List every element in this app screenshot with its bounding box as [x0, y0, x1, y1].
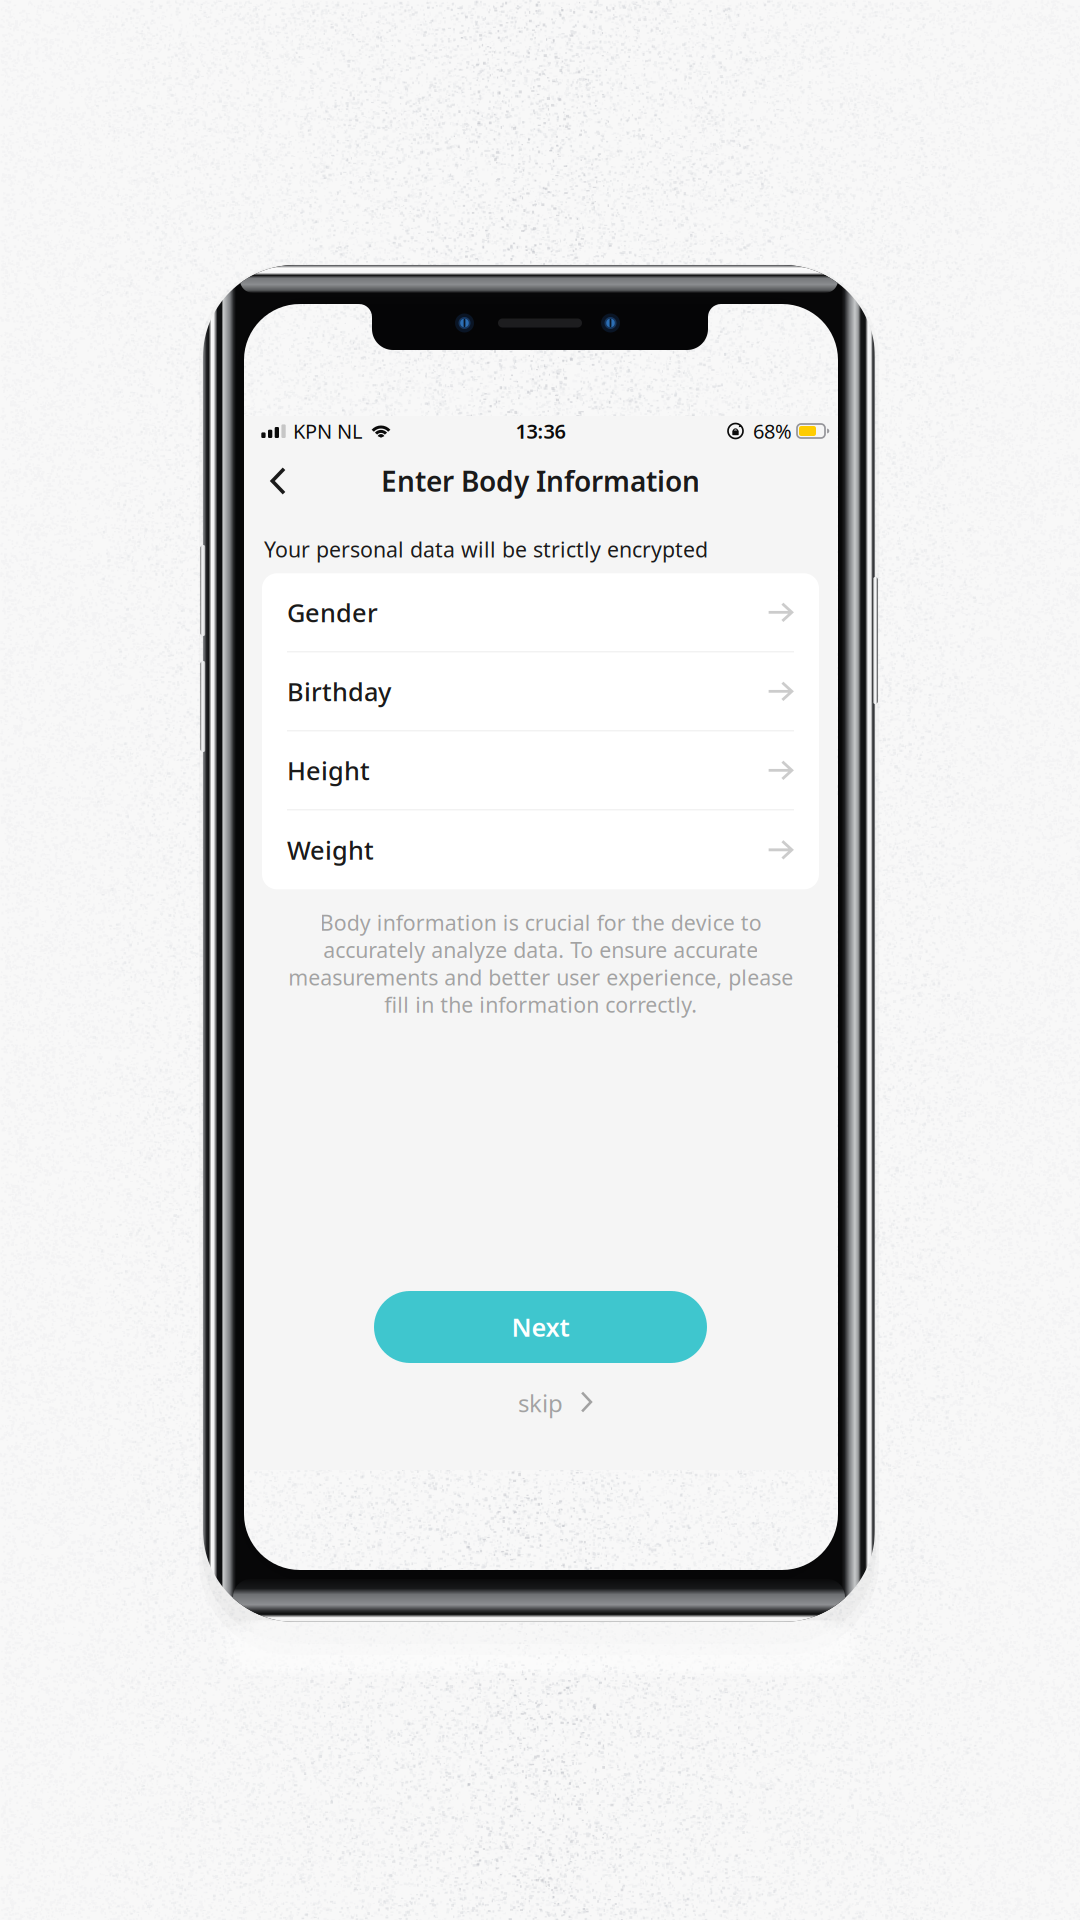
staticText: skip: [518, 1387, 563, 1419]
staticText: Next: [511, 1310, 569, 1344]
button[interactable]: Weight: [262, 810, 819, 889]
button[interactable]: skip: [460, 1382, 620, 1424]
staticText: Weight: [287, 833, 374, 867]
staticText: Height: [287, 753, 370, 787]
staticText: Birthday: [287, 674, 391, 708]
button[interactable]: Height: [262, 731, 819, 810]
button[interactable]: Next: [374, 1291, 707, 1363]
staticText: Enter Body Information: [381, 462, 700, 500]
staticText: Gender: [287, 595, 378, 629]
staticText: 68%: [753, 418, 792, 444]
button[interactable]: Back: [255, 458, 301, 504]
staticText: Your personal data will be strictly encr…: [264, 535, 708, 563]
staticText: KPN NL: [293, 418, 362, 444]
button[interactable]: Birthday: [262, 652, 819, 731]
staticText: Body information is crucial for the devi…: [288, 908, 793, 1019]
staticText: 13:36: [515, 418, 565, 444]
button[interactable]: Gender: [262, 573, 819, 652]
